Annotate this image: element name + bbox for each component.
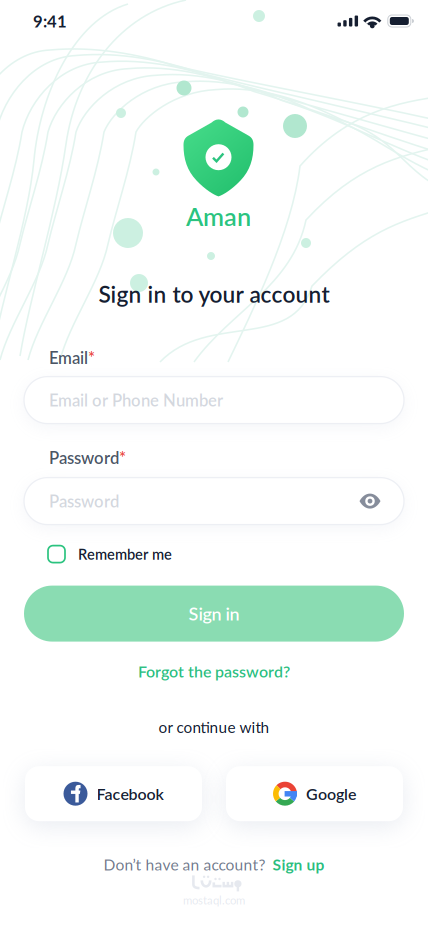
staticText: Google: [306, 784, 356, 803]
staticText: *: [88, 348, 95, 368]
button[interactable]: Facebook: [25, 766, 202, 821]
button[interactable]: Show password: [345, 483, 381, 519]
staticText: or continue with: [158, 718, 269, 736]
staticText: Don’t have an account?: [103, 855, 265, 874]
staticText: Remember me: [78, 545, 172, 563]
staticText: Email: [49, 348, 88, 368]
button[interactable]: Sign in: [24, 586, 404, 642]
button[interactable]: Forgot the password?: [24, 662, 404, 681]
staticText: Sign in: [188, 603, 239, 624]
button[interactable]: Google: [226, 766, 403, 821]
staticText: Sign in to your account: [98, 280, 329, 308]
staticText: Facebook: [96, 784, 163, 803]
staticText: Aman: [186, 201, 251, 231]
staticText: Sign up: [272, 855, 324, 874]
button[interactable]: Sign up: [272, 855, 324, 874]
staticText: Email or Phone Number: [49, 390, 223, 410]
staticText: Forgot the password?: [138, 662, 290, 681]
staticText: mostaql.com: [183, 893, 245, 907]
staticText: Password: [49, 448, 119, 468]
button[interactable]: Remember me: [24, 540, 404, 569]
staticText: *: [119, 448, 126, 468]
staticText: Password: [49, 491, 119, 511]
staticText: 9:41: [33, 11, 67, 31]
